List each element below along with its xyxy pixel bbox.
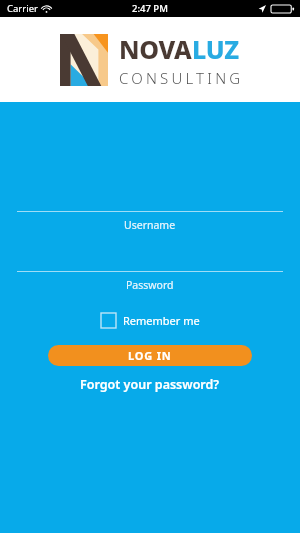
button[interactable]: Remember me (97, 310, 204, 331)
staticText: Remember me (123, 313, 200, 328)
staticText: NOVA (119, 32, 192, 66)
staticText: CONSULTING (119, 68, 244, 88)
button[interactable]: Password (0, 271, 300, 292)
staticText: Forgot your password? (80, 376, 220, 393)
staticText: LOG IN (128, 348, 172, 363)
button[interactable]: Username (0, 211, 300, 232)
button[interactable]: LOG IN (48, 345, 252, 366)
staticText: Username (124, 218, 176, 232)
staticText: Password (126, 278, 174, 292)
button[interactable]: Forgot your password? (74, 374, 226, 395)
staticText: LUZ (192, 32, 239, 66)
staticText: Carrier (7, 2, 38, 15)
staticText: 2:47 PM (132, 2, 168, 15)
